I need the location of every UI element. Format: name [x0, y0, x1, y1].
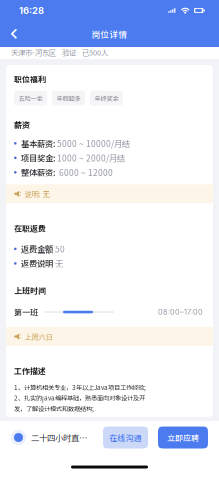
staticText: 1000 ~ 2000/月结 — [57, 152, 125, 164]
staticText: 基本薪资: — [21, 137, 55, 149]
button[interactable]: 二十四小时直… — [11, 430, 87, 445]
button[interactable]: 返回 — [3, 25, 25, 43]
staticText: 二十四小时直… — [31, 431, 87, 444]
staticText: 上班时间 — [14, 284, 46, 296]
staticText: 6000 ~ 12000 — [57, 166, 113, 178]
staticText: 验证 — [62, 47, 76, 58]
staticText: 50 — [55, 243, 65, 255]
button[interactable]: 立即应聘 — [158, 426, 208, 448]
staticText — [76, 47, 82, 58]
staticText: 1、计算机相关专业，3年以上Java项目工作经验; — [14, 383, 146, 392]
staticText: 无 — [55, 257, 63, 269]
staticText: 项目奖金: — [21, 152, 55, 164]
staticText: 5000 ~ 10000/月结 — [57, 137, 130, 149]
staticText: 已500人 — [82, 47, 108, 58]
staticText: 第一班 — [14, 306, 38, 318]
staticText: 立即应聘 — [167, 432, 199, 443]
staticText: 天津市-河东区 — [11, 47, 56, 58]
staticText: 五险一金 — [18, 94, 42, 103]
staticText: 年假超多 — [56, 94, 80, 103]
staticText: 年终奖金 — [94, 94, 118, 103]
staticText: 在线沟通 — [109, 432, 141, 443]
staticText: 返费金额 — [21, 243, 53, 255]
button[interactable]: 在线沟通 — [103, 426, 148, 448]
staticText: 整体薪资: — [21, 166, 55, 178]
staticText: 岗位详情 — [91, 28, 127, 40]
staticText: 2、扎实的java编程基础，熟悉面向对象设计及开 — [14, 393, 145, 402]
staticText: 薪资 — [14, 119, 30, 130]
staticText: 工作描述 — [14, 365, 46, 377]
staticText: 16:28 — [19, 5, 44, 16]
staticText: 发，了解设计模式和数据结构; — [14, 404, 94, 413]
staticText: 08:00–17:00 — [158, 308, 203, 316]
staticText: 说明: 无 — [24, 188, 49, 199]
staticText: 返费说明 — [21, 257, 53, 269]
staticText: 上周六日 — [24, 331, 52, 342]
staticText: 职位福利 — [14, 73, 46, 85]
staticText: 在职返费 — [14, 222, 46, 234]
